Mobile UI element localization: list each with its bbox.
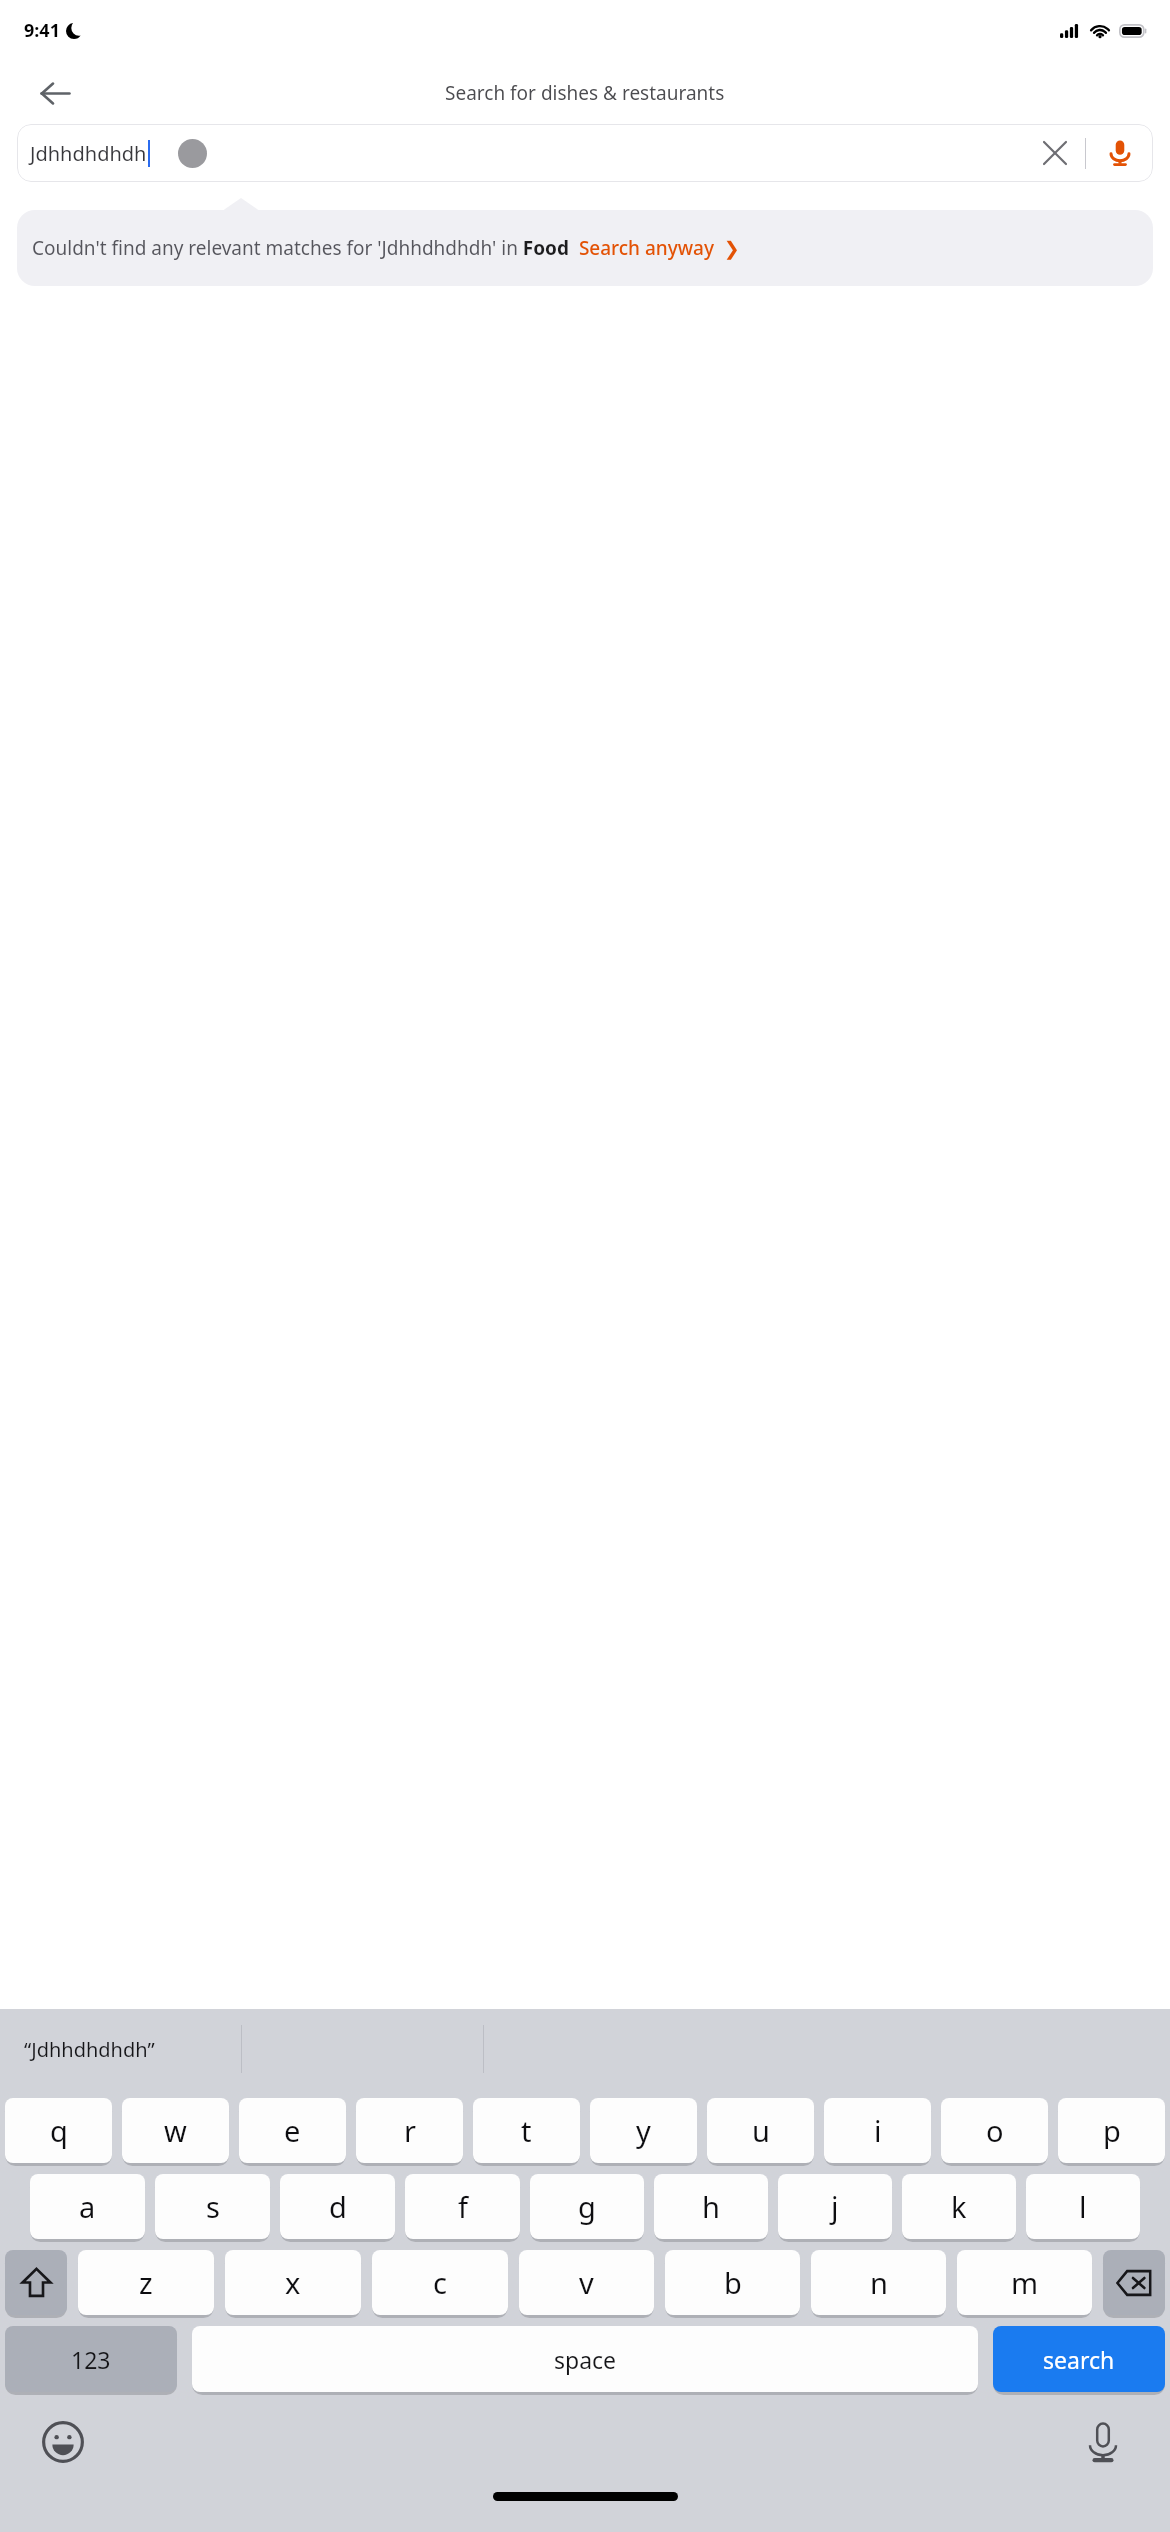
staticText: s xyxy=(206,2187,220,2226)
button[interactable]: e xyxy=(239,2098,346,2163)
staticText: e xyxy=(284,2111,301,2150)
staticText: j xyxy=(831,2187,839,2226)
button[interactable]: Dictate xyxy=(1074,2413,1132,2471)
button[interactable]: “Jdhhdhdhdh” xyxy=(10,2028,169,2071)
button[interactable]: u xyxy=(707,2098,814,2163)
staticText: f xyxy=(458,2187,468,2226)
staticText: 9:41 xyxy=(24,18,60,43)
button[interactable]: h xyxy=(654,2174,768,2239)
staticText: Search for dishes & restaurants xyxy=(445,80,725,106)
staticText: o xyxy=(986,2111,1004,2150)
button[interactable]: g xyxy=(530,2174,644,2239)
staticText: a xyxy=(79,2187,96,2226)
button[interactable]: i xyxy=(824,2098,931,2163)
staticText: t xyxy=(521,2111,532,2150)
staticText: g xyxy=(578,2187,596,2226)
staticText: i xyxy=(874,2111,882,2150)
staticText: k xyxy=(951,2187,967,2226)
button[interactable]: y xyxy=(590,2098,697,2163)
button[interactable]: l xyxy=(1026,2174,1140,2239)
staticText: v xyxy=(579,2263,594,2302)
staticText: Couldn't find any relevant matches for '… xyxy=(32,235,740,261)
staticText: p xyxy=(1103,2111,1121,2150)
staticText: d xyxy=(329,2187,347,2226)
button[interactable]: Clear text xyxy=(1032,130,1078,176)
button[interactable]: s xyxy=(155,2174,270,2239)
staticText: h xyxy=(702,2187,720,2226)
staticText: z xyxy=(139,2263,153,2302)
button[interactable]: p xyxy=(1058,2098,1165,2163)
button[interactable]: r xyxy=(356,2098,463,2163)
staticText: m xyxy=(1011,2263,1039,2302)
button[interactable]: Shift xyxy=(5,2250,67,2315)
staticText: n xyxy=(870,2263,888,2302)
button[interactable]: Voice search xyxy=(1098,131,1142,175)
button[interactable]: n xyxy=(811,2250,946,2315)
button[interactable]: m xyxy=(957,2250,1092,2315)
staticText: u xyxy=(752,2111,770,2150)
staticText: 123 xyxy=(71,2344,111,2375)
button[interactable]: space xyxy=(192,2326,978,2392)
button[interactable]: Couldn't find any relevant matches for '… xyxy=(17,210,1153,286)
staticText: q xyxy=(50,2111,68,2150)
button[interactable]: j xyxy=(778,2174,892,2239)
button[interactable]: x xyxy=(225,2250,361,2315)
button[interactable]: Jdhhdhdhdh xyxy=(17,124,1153,182)
button[interactable]: Back xyxy=(26,64,84,122)
button[interactable]: b xyxy=(665,2250,800,2315)
staticText: x xyxy=(285,2263,301,2302)
button[interactable]: v xyxy=(519,2250,654,2315)
button[interactable]: z xyxy=(78,2250,214,2315)
button[interactable]: k xyxy=(902,2174,1016,2239)
button[interactable]: o xyxy=(941,2098,1048,2163)
staticText: l xyxy=(1079,2187,1087,2226)
button[interactable]: t xyxy=(473,2098,580,2163)
staticText: w xyxy=(164,2111,187,2150)
staticText: r xyxy=(404,2111,416,2150)
staticText: search xyxy=(1043,2344,1115,2375)
staticText: c xyxy=(433,2263,447,2302)
button[interactable]: search xyxy=(993,2326,1165,2392)
staticText: Jdhhdhdhdh xyxy=(30,140,147,167)
staticText: y xyxy=(636,2111,651,2150)
button[interactable]: c xyxy=(372,2250,508,2315)
button[interactable]: Emoji keyboard xyxy=(34,2413,92,2471)
button[interactable]: a xyxy=(30,2174,145,2239)
button[interactable]: w xyxy=(122,2098,229,2163)
staticText: space xyxy=(554,2344,617,2375)
button[interactable]: f xyxy=(405,2174,520,2239)
staticText: b xyxy=(724,2263,742,2302)
button[interactable]: d xyxy=(280,2174,395,2239)
button[interactable]: q xyxy=(5,2098,112,2163)
button[interactable]: Backspace xyxy=(1103,2250,1165,2315)
button[interactable]: 123 xyxy=(5,2326,177,2392)
